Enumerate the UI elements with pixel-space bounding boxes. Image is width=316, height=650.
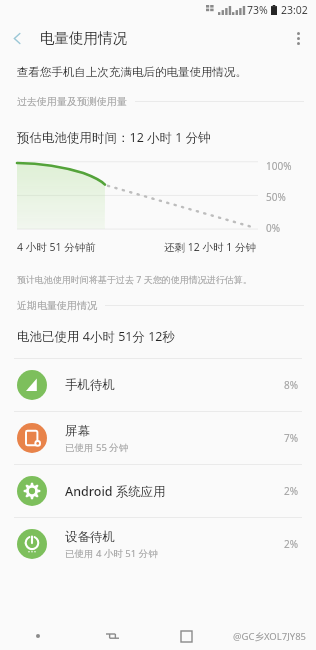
staticText: 还剩 12 小时 1 分钟: [164, 240, 256, 254]
staticText: 23:02: [281, 3, 308, 17]
staticText: 近期电量使用情况: [17, 299, 97, 312]
staticText: 100%: [266, 159, 292, 173]
button[interactable]: 设备待机: [0, 518, 316, 570]
staticText: 73%: [247, 3, 268, 17]
button[interactable]: Menu: [0, 622, 75, 650]
staticText: 预估电池使用时间：12 小时 1 分钟: [17, 129, 211, 146]
button[interactable]: 手机待机: [0, 359, 316, 411]
button[interactable]: Recent apps: [149, 622, 223, 650]
staticText: 2%: [284, 484, 299, 498]
staticText: 电量使用情况: [40, 29, 127, 47]
staticText: 50%: [266, 190, 286, 204]
staticText: 过去使用量及预测使用量: [17, 95, 127, 108]
staticText: 预计电池使用时间将基于过去 7 天您的使用情况进行估算。: [17, 273, 252, 285]
staticText: 4 小时 51 分钟前: [17, 240, 96, 254]
staticText: 2%: [284, 537, 299, 551]
staticText: Android 系统应用: [65, 483, 166, 500]
button[interactable]: 屏幕: [0, 412, 316, 464]
staticText: 0%: [266, 221, 281, 235]
staticText: 手机待机: [65, 377, 115, 393]
button[interactable]: Back: [75, 622, 149, 650]
staticText: 已使用 55 分钟: [65, 441, 129, 454]
button[interactable]: More options: [280, 20, 316, 56]
staticText: 已使用 4 小时 51 分钟: [65, 547, 158, 560]
button[interactable]: Android 系统应用: [0, 465, 316, 517]
staticText: @GC乡XOL7JY85: [233, 630, 307, 643]
staticText: 查看您手机自上次充满电后的电量使用情况。: [17, 65, 247, 79]
staticText: 电池已使用 4小时 51分 12秒: [17, 328, 176, 345]
staticText: 设备待机: [65, 529, 115, 545]
staticText: 7%: [284, 431, 299, 445]
staticText: 屏幕: [65, 423, 90, 439]
button[interactable]: Back: [0, 21, 34, 55]
staticText: 8%: [284, 378, 299, 392]
